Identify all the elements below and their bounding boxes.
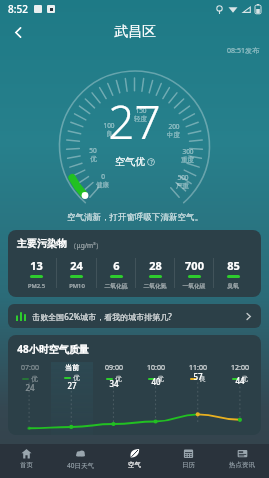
- staticText: 空气清新，打开窗呼吸下清新空气。: [67, 212, 203, 223]
- staticText: 200: [168, 122, 180, 131]
- staticText: PM10: [69, 282, 85, 290]
- staticText: 武昌区: [114, 23, 156, 41]
- staticText: 优: [157, 375, 164, 383]
- staticText: 优: [73, 374, 80, 382]
- staticText: 首页: [20, 461, 33, 469]
- button[interactable]: 首页: [0, 444, 53, 478]
- staticText: 24: [70, 258, 83, 273]
- staticText: 击败全国62%城市，看我的城市排第几?: [32, 311, 172, 322]
- staticText: 一氧化碳: [182, 282, 206, 289]
- button[interactable]: 40日天气: [53, 444, 107, 478]
- staticText: 50: [89, 146, 97, 155]
- staticText: 优: [90, 155, 97, 163]
- staticText: 300: [182, 147, 194, 156]
- staticText: 40: [151, 376, 161, 387]
- staticText: 07:00: [21, 363, 39, 373]
- staticText: 40日天气: [67, 461, 94, 470]
- staticText: 57: [193, 371, 203, 382]
- staticText: 44: [235, 375, 245, 386]
- button[interactable]: 击败全国62%城市，看我的城市排第几?: [8, 304, 261, 328]
- staticText: 良: [106, 130, 113, 138]
- staticText: 8:52: [8, 2, 28, 16]
- staticText: 当前: [65, 363, 79, 372]
- staticText: 健康: [96, 181, 109, 189]
- staticText: 24: [25, 382, 35, 393]
- staticText: 85: [227, 258, 240, 273]
- staticText: 10:00: [147, 363, 165, 373]
- staticText: 二氧化硫: [104, 282, 128, 289]
- staticText: 空气优: [115, 155, 145, 168]
- staticText: 优: [31, 375, 38, 383]
- button[interactable]: 48小时空气质量: [8, 335, 261, 435]
- staticText: 良: [199, 375, 206, 383]
- staticText: 臭氧: [227, 282, 239, 289]
- staticText: 12:00: [231, 363, 249, 373]
- staticText: ?: [150, 159, 153, 166]
- button[interactable]: 日历: [161, 444, 215, 478]
- staticText: PM2.5: [28, 282, 45, 290]
- staticText: 08:51发布: [227, 46, 259, 56]
- staticText: 热点资讯: [229, 461, 255, 469]
- staticText: 27: [108, 90, 161, 153]
- button[interactable]: 说明: [147, 158, 155, 166]
- staticText: 二氧化氮: [143, 282, 167, 289]
- staticText: 48小时空气质量: [17, 342, 89, 356]
- staticText: 重度: [181, 156, 194, 164]
- button[interactable]: 主要污染物: [8, 230, 261, 297]
- staticText: 优: [241, 375, 248, 383]
- staticText: 中度: [167, 131, 180, 139]
- button[interactable]: 空气: [107, 444, 161, 478]
- staticText: 27: [67, 380, 77, 391]
- staticText: 优: [115, 375, 122, 383]
- staticText: 轻度: [134, 115, 147, 123]
- button[interactable]: Back: [4, 18, 32, 46]
- button[interactable]: 热点资讯: [215, 444, 269, 478]
- staticText: （μg/m³）: [70, 241, 102, 250]
- staticText: 严重: [176, 182, 189, 190]
- staticText: 700: [185, 258, 204, 273]
- staticText: 500: [177, 173, 189, 182]
- staticText: 28: [149, 258, 162, 273]
- staticText: 11:00: [189, 363, 207, 373]
- staticText: 34: [109, 378, 119, 389]
- staticText: 6: [113, 258, 120, 273]
- staticText: 100: [103, 121, 115, 130]
- staticText: 日历: [182, 461, 195, 469]
- staticText: 09:00: [105, 363, 123, 373]
- staticText: 0: [101, 172, 105, 181]
- staticText: 主要污染物: [17, 237, 67, 250]
- staticText: 空气: [128, 461, 141, 469]
- staticText: 150: [135, 106, 147, 115]
- staticText: 13: [30, 258, 43, 273]
